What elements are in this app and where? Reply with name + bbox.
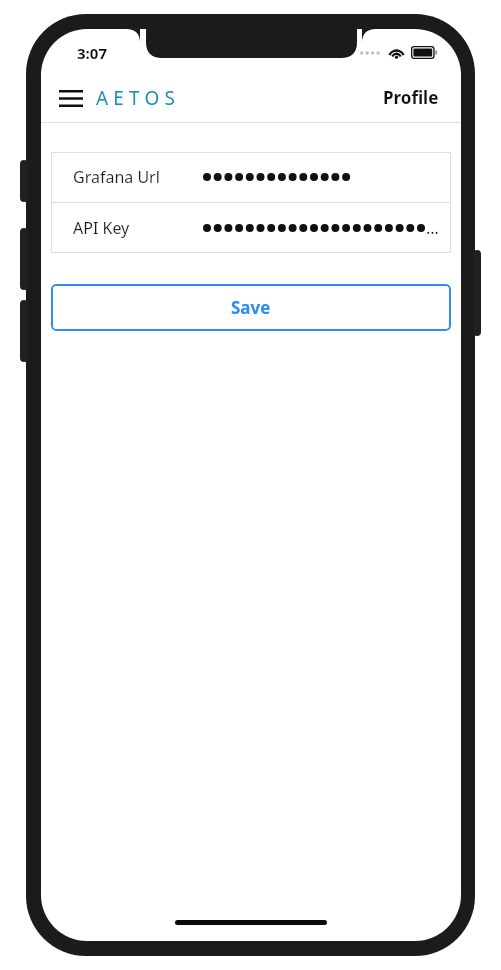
staticText: Grafana Url: [73, 166, 160, 188]
staticText: Profile: [383, 86, 439, 109]
staticText: AETOS: [96, 85, 181, 111]
button[interactable]: Grafana Url: [51, 152, 451, 202]
button[interactable]: AETOS: [96, 85, 181, 111]
staticText: API Key: [73, 217, 130, 239]
button[interactable]: Open navigation menu: [54, 81, 88, 115]
button[interactable]: Save: [51, 284, 451, 331]
staticText: 3:07: [77, 43, 107, 63]
staticText: Save: [231, 296, 271, 319]
button[interactable]: Profile: [383, 86, 461, 109]
staticText: ...: [426, 217, 439, 239]
button[interactable]: API Key: [51, 203, 451, 253]
